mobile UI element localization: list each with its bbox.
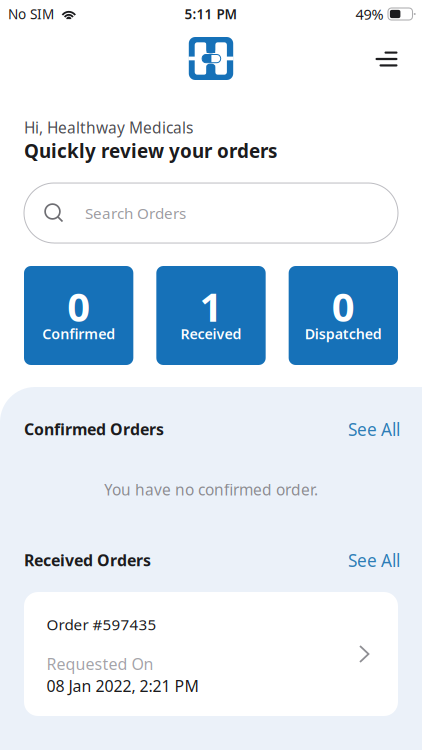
staticText: No SIM — [8, 5, 54, 23]
staticText: 08 Jan 2022, 2:21 PM — [46, 675, 198, 697]
staticText: 0 — [332, 279, 355, 333]
staticText: Confirmed Orders — [24, 418, 164, 440]
button[interactable]: 0 — [289, 266, 398, 365]
staticText: Search Orders — [85, 203, 186, 223]
staticText: Order #597435 — [46, 614, 156, 635]
button[interactable]: Search Orders — [24, 183, 398, 243]
button[interactable]: Order #597435 — [24, 592, 398, 716]
button[interactable]: See All — [348, 417, 400, 441]
staticText: Quickly review your orders — [24, 138, 277, 164]
staticText: Confirmed — [42, 324, 115, 343]
staticText: Received Orders — [24, 549, 151, 571]
button[interactable]: 1 — [156, 266, 266, 365]
staticText: Dispatched — [305, 324, 382, 343]
button[interactable]: Menu — [364, 37, 408, 81]
staticText: See All — [348, 417, 400, 441]
staticText: 1 — [199, 279, 222, 333]
button[interactable]: 0 — [24, 266, 133, 365]
staticText: 0 — [67, 279, 90, 333]
staticText: Received — [180, 324, 241, 343]
staticText: 49% — [355, 4, 383, 24]
staticText: Requested On — [46, 653, 153, 675]
staticText: See All — [348, 548, 400, 572]
staticText: 5:11 PM — [184, 5, 237, 23]
staticText: Hi, Healthway Medicals — [24, 117, 193, 138]
button[interactable]: See All — [348, 548, 400, 572]
staticText: You have no confirmed order. — [104, 479, 318, 500]
